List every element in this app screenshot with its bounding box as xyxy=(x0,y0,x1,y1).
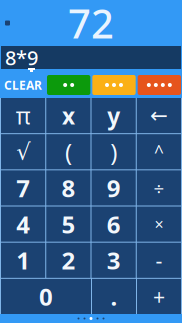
button[interactable]: 0 xyxy=(1,279,91,314)
button[interactable]: 4 xyxy=(1,206,45,242)
staticText: CLEAR xyxy=(4,77,42,93)
staticText: 72 xyxy=(68,0,114,49)
staticText: - xyxy=(155,246,162,274)
button[interactable]: ( xyxy=(46,134,90,169)
button[interactable]: - xyxy=(137,243,181,278)
staticText: ( xyxy=(65,136,72,168)
button[interactable]: ) xyxy=(91,134,136,169)
button[interactable]: x xyxy=(46,98,90,133)
button[interactable]: 3 xyxy=(91,243,136,278)
staticText: 8*9 xyxy=(5,44,38,71)
staticText: y xyxy=(107,100,120,131)
staticText: √ xyxy=(16,139,30,165)
button[interactable]: Four decimal places xyxy=(138,75,181,95)
button[interactable]: 8 xyxy=(46,170,90,205)
button[interactable]: π xyxy=(1,98,45,133)
staticText: 1 xyxy=(16,244,30,276)
button[interactable]: Two decimal places xyxy=(47,75,90,95)
button[interactable]: 9 xyxy=(91,170,136,205)
staticText: ÷ xyxy=(153,175,164,200)
staticText: ← xyxy=(150,103,168,128)
staticText: 9 xyxy=(107,172,121,204)
staticText: . xyxy=(110,280,117,312)
button[interactable]: + xyxy=(137,279,181,314)
button[interactable]: ← xyxy=(137,98,181,133)
staticText: 5 xyxy=(61,208,75,240)
staticText: 4 xyxy=(16,208,30,240)
button[interactable]: 6 xyxy=(91,206,136,242)
staticText: 6 xyxy=(107,208,121,240)
button[interactable]: CLEAR xyxy=(1,75,45,95)
button[interactable]: Three decimal places xyxy=(92,75,136,95)
button[interactable]: . xyxy=(92,279,136,314)
button[interactable]: 5 xyxy=(46,206,90,242)
button[interactable]: √ xyxy=(1,134,45,169)
staticText: ^ xyxy=(154,140,164,163)
button[interactable]: y xyxy=(91,98,136,133)
button[interactable]: ÷ xyxy=(137,170,181,205)
staticText: 2 xyxy=(61,244,75,276)
button[interactable]: 7 xyxy=(1,170,45,205)
staticText: ) xyxy=(110,136,117,168)
staticText: 3 xyxy=(107,244,121,276)
staticText: + xyxy=(153,282,165,311)
staticText: 7 xyxy=(16,172,30,204)
button[interactable]: 2 xyxy=(46,243,90,278)
staticText: × xyxy=(154,213,163,235)
staticText: 0 xyxy=(39,280,53,312)
staticText: π xyxy=(16,100,31,131)
staticText: x xyxy=(62,100,75,131)
staticText: 8 xyxy=(61,172,75,204)
button[interactable]: 1 xyxy=(1,243,45,278)
button[interactable]: ^ xyxy=(137,134,181,169)
button[interactable]: × xyxy=(137,206,181,242)
